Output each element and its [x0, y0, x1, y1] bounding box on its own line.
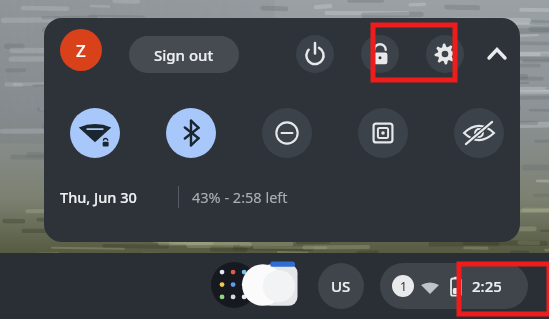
button[interactable]: Wi-Fi — [70, 108, 120, 158]
button[interactable]: US — [318, 263, 364, 309]
button[interactable]: App — [211, 262, 257, 308]
button[interactable]: Collapse — [478, 35, 516, 73]
button[interactable]: 1 — [380, 263, 528, 309]
staticText: Sign out — [154, 45, 214, 65]
button[interactable]: Do not disturb — [262, 108, 312, 158]
staticText: 1 — [400, 278, 407, 294]
button[interactable]: Lock — [361, 35, 399, 73]
button[interactable]: Z — [60, 29, 102, 71]
button[interactable]: Bluetooth — [166, 108, 216, 158]
staticText: Z — [76, 39, 86, 62]
button[interactable]: Screen capture — [358, 108, 408, 158]
staticText: US — [331, 276, 351, 296]
button[interactable]: Keep screen off — [454, 108, 504, 158]
button[interactable]: Sign out — [129, 36, 239, 73]
button[interactable]: Window — [238, 259, 300, 311]
button[interactable]: Thu, Jun 30 — [60, 180, 172, 214]
staticText: Thu, Jun 30 — [60, 187, 137, 207]
button[interactable]: 43% - 2:58 left — [192, 180, 322, 214]
staticText: 43% - 2:58 left — [192, 187, 288, 207]
button[interactable]: Settings — [426, 35, 464, 73]
button[interactable]: Power — [296, 35, 334, 73]
staticText: 2:25 — [472, 276, 502, 296]
